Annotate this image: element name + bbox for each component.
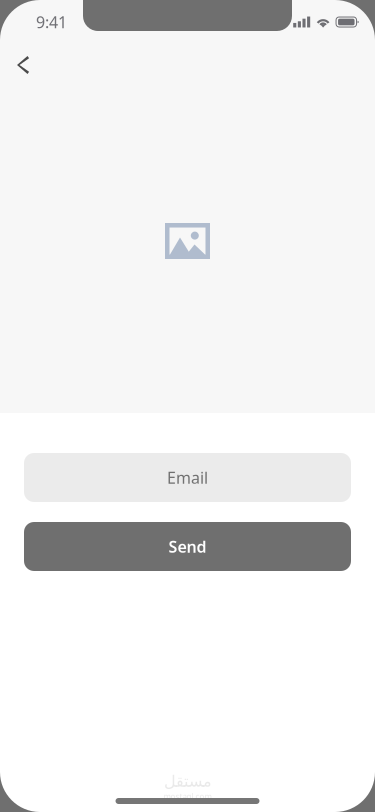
- staticText: Send: [168, 536, 206, 557]
- staticText: mostaql.com: [163, 791, 211, 802]
- button[interactable]: Send: [0, 522, 375, 571]
- staticText: Email: [167, 467, 208, 488]
- staticText: مستقل: [163, 772, 211, 790]
- button[interactable]: Back: [0, 44, 44, 85]
- staticText: 9:41: [36, 11, 67, 33]
